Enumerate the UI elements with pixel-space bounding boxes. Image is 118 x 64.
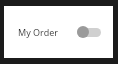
staticText: My Order — [18, 26, 58, 38]
button[interactable]: Toggle My Order — [77, 25, 101, 39]
button[interactable]: My Order — [4, 6, 113, 58]
